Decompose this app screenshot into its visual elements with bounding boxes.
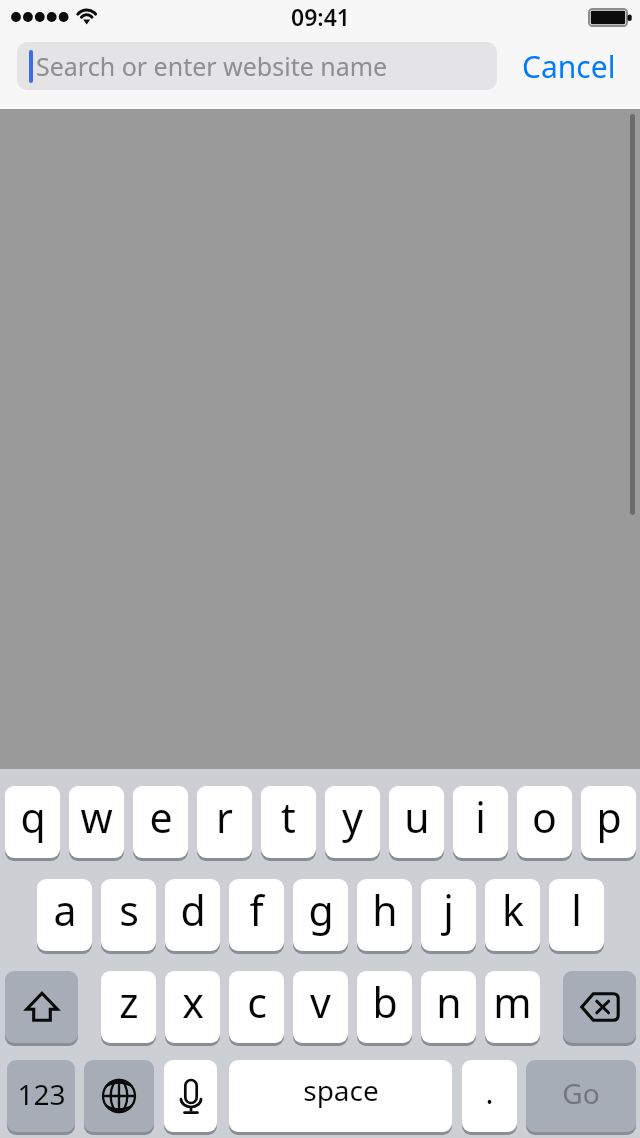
staticText: e <box>149 789 173 845</box>
button[interactable]: r <box>197 786 252 858</box>
staticText: f <box>249 882 264 938</box>
staticText: 09:41 <box>291 1 350 32</box>
staticText: y <box>342 789 363 845</box>
button[interactable]: Change keyboard <box>84 1060 154 1132</box>
button[interactable]: i <box>453 786 508 858</box>
staticText: Search or enter website name <box>36 49 388 83</box>
staticText: m <box>493 974 532 1030</box>
button[interactable]: d <box>165 879 220 951</box>
button[interactable]: n <box>421 971 476 1043</box>
button[interactable]: x <box>165 971 220 1043</box>
staticText: w <box>80 789 113 845</box>
staticText: s <box>119 882 139 938</box>
staticText: d <box>180 882 206 938</box>
button[interactable]: p <box>581 786 636 858</box>
button[interactable]: Search or enter website name <box>17 42 497 90</box>
button[interactable]: l <box>549 879 604 951</box>
staticText: o <box>532 789 557 845</box>
staticText: j <box>443 882 454 938</box>
button[interactable]: g <box>293 879 348 951</box>
staticText: p <box>596 789 622 845</box>
button[interactable]: v <box>293 971 348 1043</box>
button[interactable]: z <box>101 971 156 1043</box>
staticText: Go <box>562 1074 600 1112</box>
button[interactable]: h <box>357 879 412 951</box>
button[interactable]: Dictation <box>164 1060 217 1132</box>
button[interactable]: o <box>517 786 572 858</box>
staticText: space <box>303 1071 379 1109</box>
staticText: c <box>247 974 267 1030</box>
button[interactable]: t <box>261 786 316 858</box>
button[interactable]: Cancel <box>497 42 640 90</box>
staticText: u <box>404 789 430 845</box>
button[interactable]: y <box>325 786 380 858</box>
button[interactable]: f <box>229 879 284 951</box>
staticText: n <box>436 974 462 1030</box>
staticText: z <box>119 974 139 1030</box>
button[interactable]: s <box>101 879 156 951</box>
button[interactable]: . <box>462 1060 517 1132</box>
staticText: 123 <box>17 1075 66 1113</box>
staticText: v <box>310 974 331 1030</box>
staticText: x <box>182 974 204 1030</box>
button[interactable]: 123 <box>7 1060 75 1132</box>
staticText: h <box>372 882 398 938</box>
staticText: r <box>216 789 233 845</box>
staticText: k <box>502 882 524 938</box>
button[interactable]: w <box>69 786 124 858</box>
staticText: l <box>571 882 582 938</box>
staticText: i <box>475 789 486 845</box>
button[interactable]: e <box>133 786 188 858</box>
button[interactable]: Shift <box>5 971 78 1043</box>
button[interactable]: Go <box>526 1060 636 1132</box>
button[interactable]: q <box>5 786 60 858</box>
button[interactable]: Backspace <box>563 971 636 1043</box>
staticText: a <box>53 882 77 938</box>
staticText: . <box>485 1072 494 1113</box>
button[interactable]: j <box>421 879 476 951</box>
button[interactable]: a <box>37 879 92 951</box>
button[interactable]: space <box>229 1060 452 1132</box>
staticText: b <box>372 974 398 1030</box>
button[interactable]: u <box>389 786 444 858</box>
button[interactable]: k <box>485 879 540 951</box>
staticText: q <box>20 789 46 845</box>
button[interactable]: b <box>357 971 412 1043</box>
staticText: Cancel <box>522 46 616 87</box>
staticText: g <box>308 882 334 938</box>
button[interactable]: c <box>229 971 284 1043</box>
button[interactable]: m <box>485 971 540 1043</box>
staticText: t <box>281 789 296 845</box>
